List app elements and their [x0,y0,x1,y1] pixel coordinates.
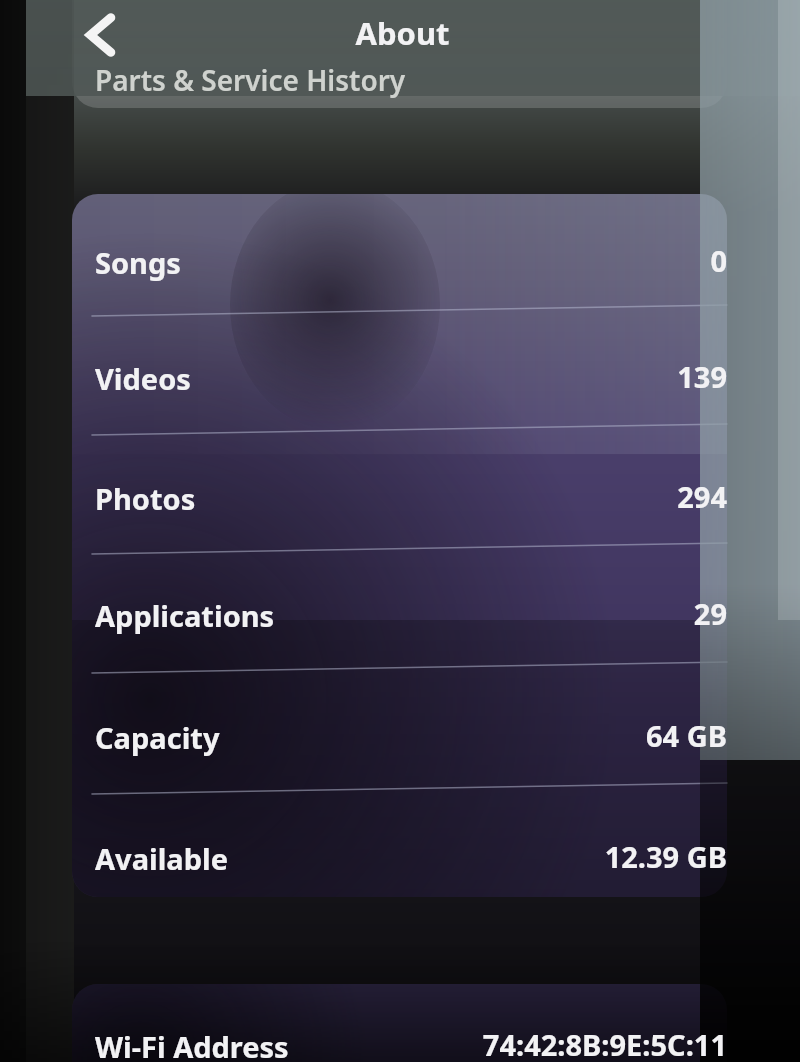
staticText: 294 [677,477,727,516]
staticText: 74:42:8B:9E:5C:11 [482,1025,727,1062]
button[interactable]: Available [72,794,727,910]
staticText: 139 [677,357,727,396]
staticText: Applications [95,596,275,635]
button[interactable]: Back [66,4,134,66]
staticText: About [355,12,450,54]
staticText: Available [95,839,228,878]
staticText: Capacity [95,718,220,757]
button[interactable]: Capacity [72,673,727,789]
staticText: Photos [95,479,196,518]
staticText: 0 [710,241,727,280]
staticText: 29 [693,594,727,633]
staticText: Videos [95,359,191,398]
staticText: 12.39 GB [604,837,727,876]
button[interactable]: Parts & Service History [72,40,727,102]
staticText: Parts & Service History [95,61,406,99]
button[interactable]: Photos [72,434,727,550]
button[interactable]: Songs [72,198,727,314]
button[interactable]: Videos [72,314,727,430]
button[interactable]: Applications [72,551,727,667]
staticText: Wi-Fi Address [95,1027,289,1062]
button[interactable]: Wi-Fi Address [72,990,727,1062]
staticText: Songs [95,243,181,282]
staticText: 64 GB [646,716,727,755]
